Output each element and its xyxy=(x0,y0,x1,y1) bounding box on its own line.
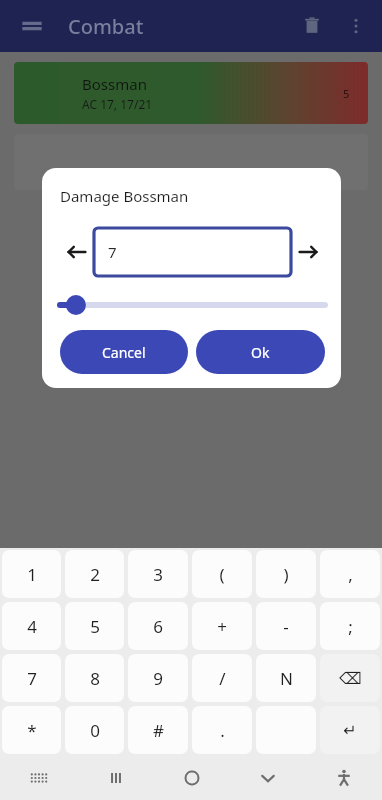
button[interactable]: 2 xyxy=(65,550,124,598)
button[interactable]: # xyxy=(128,706,188,754)
staticText: AC 17, 17/21 xyxy=(82,96,153,112)
staticText: 6 xyxy=(153,615,163,638)
button[interactable]: 6 xyxy=(128,602,188,650)
staticText: # xyxy=(153,719,164,742)
button[interactable]: 0 xyxy=(65,706,124,754)
staticText: Combat xyxy=(68,13,144,40)
staticText: 1 xyxy=(27,563,37,586)
staticText: / xyxy=(219,667,226,690)
button[interactable]: Recents xyxy=(77,756,154,800)
staticText: Ok xyxy=(251,343,270,362)
button[interactable]: * xyxy=(2,706,61,754)
button[interactable]: , xyxy=(320,550,380,598)
button[interactable]: N xyxy=(256,654,316,702)
staticText: 7 xyxy=(27,667,37,690)
button[interactable]: - xyxy=(256,602,316,650)
button[interactable]: 5 xyxy=(65,602,124,650)
staticText: ) xyxy=(283,563,289,586)
button[interactable]: More options xyxy=(334,4,378,48)
staticText: . xyxy=(220,719,225,742)
button[interactable]: 1 xyxy=(2,550,61,598)
staticText: 0 xyxy=(90,719,100,742)
staticText: 4 xyxy=(27,615,37,638)
staticText: 2 xyxy=(90,563,100,586)
staticText: 8 xyxy=(90,667,100,690)
staticText: 5 xyxy=(343,86,350,101)
staticText: * xyxy=(27,719,37,742)
button[interactable]: 3 xyxy=(128,550,188,598)
button[interactable]: Hide keyboard xyxy=(230,756,306,800)
button[interactable] xyxy=(60,294,325,316)
button[interactable]: ; xyxy=(320,602,380,650)
staticText: ↵ xyxy=(343,721,357,740)
button[interactable]: ( xyxy=(192,550,252,598)
staticText: ⌫ xyxy=(339,669,362,688)
button[interactable]: 9 xyxy=(128,654,188,702)
staticText: , xyxy=(348,563,353,586)
staticText: Bossman xyxy=(82,74,147,94)
staticText: + xyxy=(217,615,227,638)
staticText: ( xyxy=(219,563,225,586)
button[interactable]: Menu xyxy=(10,4,54,48)
button[interactable]: Home xyxy=(154,756,230,800)
button[interactable]: 8 xyxy=(65,654,124,702)
button[interactable]: Cancel xyxy=(60,330,188,374)
button[interactable]: Keyboard switcher xyxy=(0,756,77,800)
button[interactable]: Decrease xyxy=(60,235,94,269)
button[interactable]: Increase xyxy=(291,235,325,269)
button[interactable]: ↵ xyxy=(320,706,380,754)
staticText: 5 xyxy=(90,615,100,638)
staticText: - xyxy=(283,615,289,638)
button[interactable]: . xyxy=(192,706,252,754)
button[interactable]: + xyxy=(192,602,252,650)
staticText: 9 xyxy=(153,667,163,690)
staticText: Cancel xyxy=(102,343,146,362)
button[interactable] xyxy=(14,134,368,190)
button[interactable]: 7 xyxy=(2,654,61,702)
staticText: Damage Bossman xyxy=(60,186,189,206)
button[interactable]: ) xyxy=(256,550,316,598)
button[interactable]: Accessibility xyxy=(306,756,382,800)
button[interactable]: Ok xyxy=(196,330,325,374)
staticText: N xyxy=(280,667,293,690)
button[interactable]: Delete xyxy=(290,4,334,48)
button[interactable]: ⌫ xyxy=(320,654,380,702)
button[interactable]: Bossman xyxy=(14,62,368,124)
button[interactable]: / xyxy=(192,654,252,702)
staticText: 7 xyxy=(108,242,117,262)
staticText: 3 xyxy=(153,563,163,586)
button[interactable]: 4 xyxy=(2,602,61,650)
staticText: ; xyxy=(348,615,353,638)
